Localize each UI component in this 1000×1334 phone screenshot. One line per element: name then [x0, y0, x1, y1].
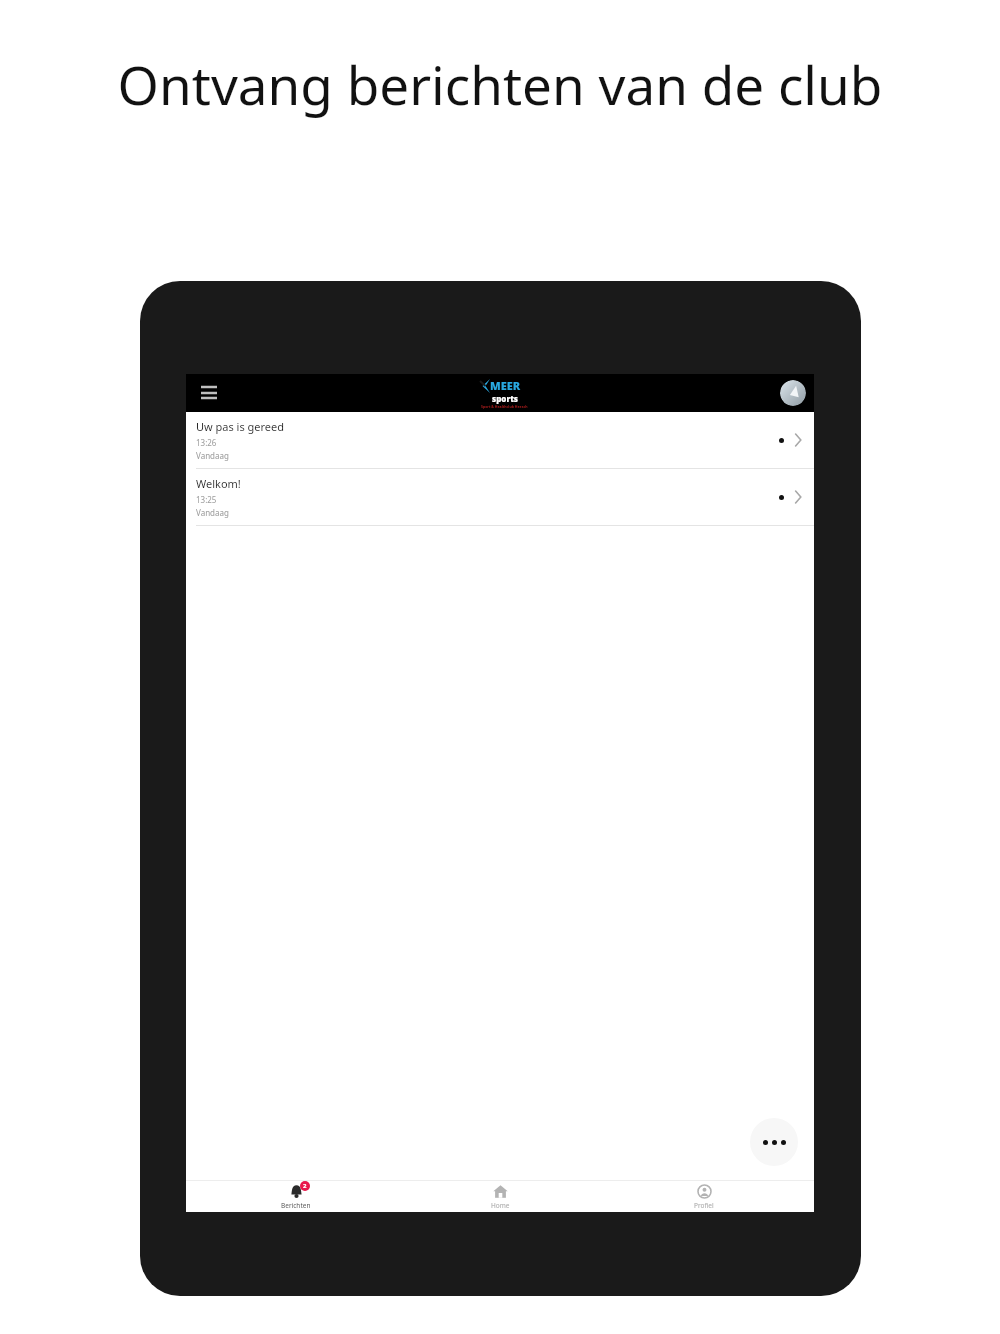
staticText: Uw pas is gereed [196, 419, 285, 434]
staticText: Profiel [694, 1201, 714, 1210]
staticText: Vandaag [196, 450, 229, 461]
button[interactable]: Uw pas is gereed [186, 412, 814, 469]
staticText: sports [492, 393, 518, 404]
button[interactable]: Profile avatar [780, 380, 806, 406]
staticText: Welkom! [196, 476, 241, 491]
staticText: 13:25 [196, 494, 217, 505]
staticText: Sport & Healthclub Heesch [481, 404, 528, 409]
staticText: Home [491, 1201, 510, 1210]
staticText: 2 [303, 1182, 307, 1190]
button[interactable]: More options [750, 1118, 798, 1166]
staticText: Vandaag [196, 507, 229, 518]
button[interactable]: Home [472, 1181, 528, 1212]
staticText: MEER [490, 378, 521, 393]
button[interactable]: Menu [194, 378, 224, 408]
staticText: Ontvang berichten van de club [72, 48, 928, 120]
staticText: Berichten [281, 1201, 311, 1210]
button[interactable]: Welkom! [186, 469, 814, 526]
button[interactable]: 2 [268, 1181, 324, 1212]
button[interactable]: Profiel [676, 1181, 732, 1212]
staticText: 13:26 [196, 437, 217, 448]
